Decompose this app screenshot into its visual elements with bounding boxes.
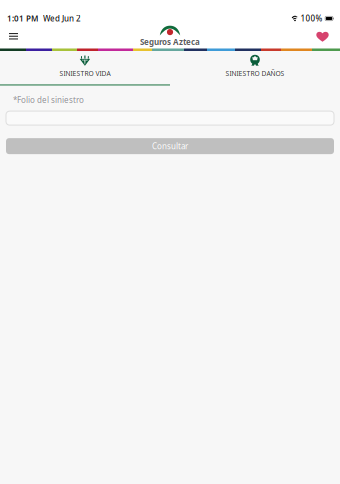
button[interactable]: Consultar <box>6 138 334 154</box>
staticText: *Folio del siniestro <box>13 94 84 105</box>
staticText: SINIESTRO DAÑOS <box>225 69 284 78</box>
staticText: Consultar <box>152 141 188 151</box>
staticText: 100% <box>300 13 322 24</box>
button[interactable]: Favorites <box>311 28 334 45</box>
button[interactable]: SINIESTRO VIDA <box>0 51 170 85</box>
staticText: Wed Jun 2 <box>43 13 81 24</box>
staticText: Seguros Azteca <box>140 37 200 47</box>
staticText: 1:01 PM <box>7 13 38 24</box>
button[interactable]: Menu <box>4 28 23 45</box>
button[interactable]: SINIESTRO DAÑOS <box>170 51 340 85</box>
staticText: SINIESTRO VIDA <box>59 69 110 78</box>
